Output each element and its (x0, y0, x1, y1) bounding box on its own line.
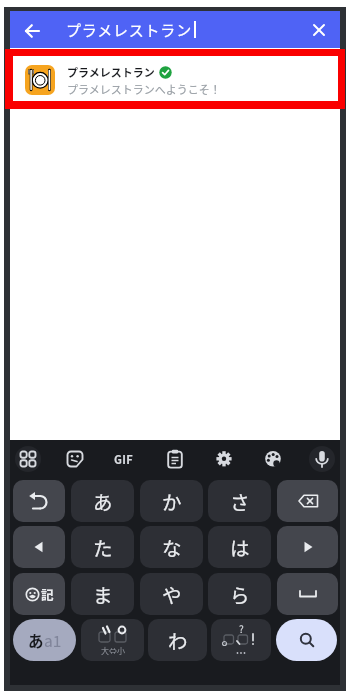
staticText: あ (93, 487, 113, 515)
staticText: は (230, 533, 250, 561)
button[interactable] (257, 443, 289, 475)
button[interactable] (305, 16, 333, 44)
button[interactable]: ら (208, 573, 271, 615)
button[interactable]: 記 (13, 573, 65, 615)
staticText: な (162, 533, 182, 561)
staticText: 記 (41, 585, 54, 603)
staticText: た (93, 533, 113, 561)
staticText: わ (168, 626, 188, 654)
button[interactable]: わ (148, 619, 207, 661)
button[interactable] (277, 480, 338, 522)
button[interactable]: か (140, 480, 203, 522)
button[interactable] (59, 443, 91, 475)
staticText: プラメレストラン (67, 64, 155, 80)
staticText: や (162, 580, 182, 608)
button[interactable]: あ (13, 619, 76, 661)
button[interactable] (208, 443, 240, 475)
button[interactable]: さ (208, 480, 271, 522)
button[interactable]: た (71, 526, 134, 568)
button[interactable] (18, 17, 46, 45)
button[interactable]: あ (71, 480, 134, 522)
staticText: プラメレストラン (66, 19, 192, 41)
button[interactable]: は (208, 526, 271, 568)
button[interactable] (13, 480, 65, 522)
staticText: ま (93, 580, 113, 608)
button[interactable] (15, 446, 41, 472)
button[interactable] (5, 49, 345, 109)
button[interactable]: ? (211, 619, 271, 661)
button[interactable]: や (140, 573, 203, 615)
button[interactable] (159, 443, 191, 475)
button[interactable] (13, 526, 65, 568)
staticText: ら (230, 580, 250, 608)
staticText: a1 (44, 629, 62, 651)
staticText: か (162, 487, 182, 515)
button[interactable]: な (140, 526, 203, 568)
button[interactable] (277, 526, 338, 568)
staticText: さ (230, 487, 250, 515)
button[interactable] (277, 573, 338, 615)
button[interactable]: ま (71, 573, 134, 615)
staticText: プラメレストランへようこそ！ (67, 81, 221, 97)
staticText: あ (28, 629, 44, 651)
button[interactable] (10, 11, 340, 48)
staticText: 大⇔小 (101, 645, 125, 657)
button[interactable] (276, 619, 337, 661)
staticText: GIF (114, 451, 134, 467)
staticText: ? (239, 621, 244, 633)
button[interactable]: GIF (108, 443, 140, 475)
button[interactable] (309, 446, 335, 472)
button[interactable]: 大⇔小 (81, 619, 144, 661)
